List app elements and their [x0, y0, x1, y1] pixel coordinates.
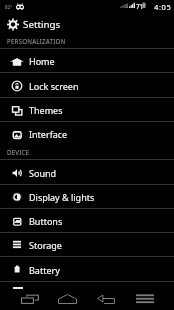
staticText: Display & lights [29, 191, 95, 203]
button[interactable]: Home [0, 49, 174, 73]
staticText: Sound [29, 167, 57, 179]
staticText: PERSONALIZATION [7, 37, 66, 45]
staticText: Battery [29, 264, 60, 276]
button[interactable]: Battery [0, 257, 174, 282]
button[interactable]: Home [52, 282, 83, 310]
button[interactable]: Themes [0, 98, 174, 122]
staticText: Themes [29, 104, 63, 116]
button[interactable]: Sound [0, 160, 174, 185]
staticText: Home [29, 55, 55, 67]
button[interactable]: Display & lights [0, 185, 174, 209]
button[interactable]: Lock screen [0, 73, 174, 98]
button[interactable]: Settings [0, 13, 174, 35]
staticText: Settings [23, 18, 61, 31]
staticText: Buttons [29, 215, 63, 227]
staticText: DEVICE [7, 148, 30, 156]
button[interactable]: Back [91, 282, 121, 310]
staticText: 82° [5, 4, 13, 10]
staticText: Storage [29, 239, 62, 251]
button[interactable]: Menu [130, 282, 160, 310]
staticText: 4:05 [154, 2, 172, 12]
button[interactable]: Recent apps [15, 282, 45, 310]
staticText: Interface [29, 128, 68, 140]
button[interactable]: Storage [0, 233, 174, 257]
button[interactable]: Interface [0, 122, 174, 146]
staticText: 71 [136, 2, 144, 11]
button[interactable]: Buttons [0, 209, 174, 233]
staticText: Lock screen [29, 80, 79, 92]
